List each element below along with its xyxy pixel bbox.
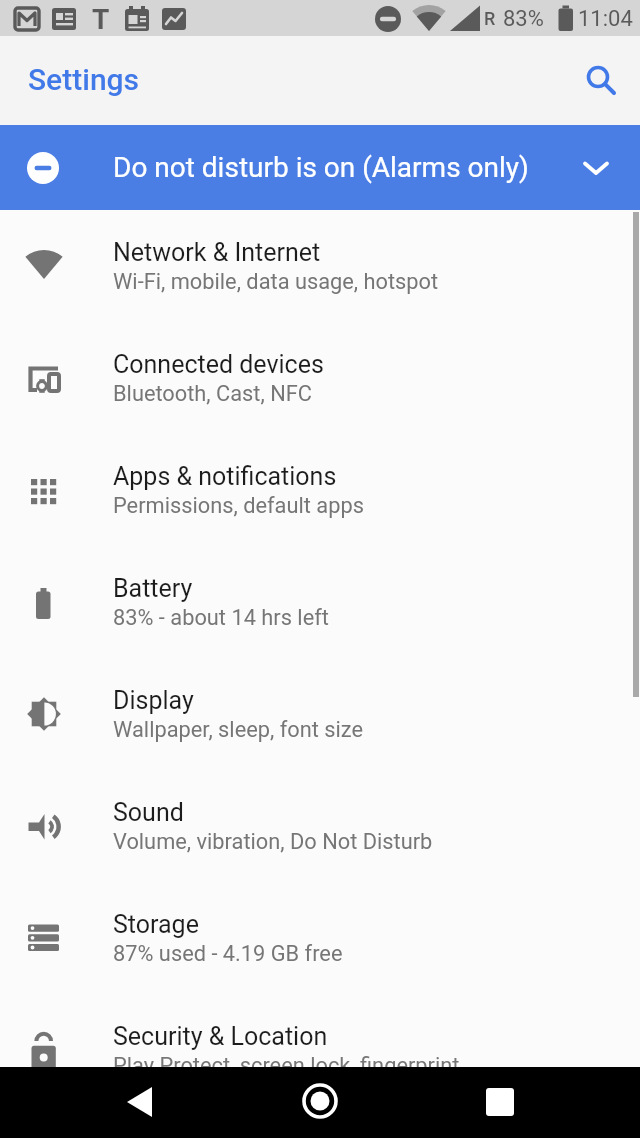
button[interactable]: Battery — [0, 546, 640, 658]
staticText: Bluetooth, Cast, NFC — [113, 381, 312, 407]
staticText: Connected devices — [113, 350, 324, 379]
button[interactable]: Sound — [0, 770, 640, 882]
button[interactable]: Apps & notifications — [0, 434, 640, 546]
button[interactable]: Network & Internet — [0, 210, 640, 322]
staticText: Do not disturb is on (Alarms only) — [113, 151, 529, 184]
staticText: Sound — [113, 798, 184, 827]
button[interactable] — [470, 1082, 530, 1122]
button[interactable]: Storage — [0, 882, 640, 994]
staticText: R — [484, 8, 496, 29]
staticText: Wallpaper, sleep, font size — [113, 717, 364, 743]
staticText: Permissions, default apps — [113, 493, 364, 519]
staticText: 83% - about 14 hrs left — [113, 605, 329, 631]
button[interactable] — [110, 1082, 170, 1122]
staticText: 83% — [503, 6, 544, 32]
staticText: Display — [113, 686, 194, 715]
staticText: Play Protect, screen lock, fingerprint — [113, 1053, 460, 1079]
staticText: Battery — [113, 574, 193, 603]
staticText: Volume, vibration, Do Not Disturb — [113, 829, 433, 855]
staticText: Settings — [28, 62, 140, 97]
button[interactable] — [290, 1082, 350, 1122]
button[interactable]: Do not disturb is on (Alarms only) — [0, 125, 640, 210]
staticText: 87% used - 4.19 GB free — [113, 941, 343, 967]
staticText: T — [92, 3, 110, 36]
staticText: Network & Internet — [113, 238, 321, 267]
button[interactable] — [576, 54, 624, 102]
staticText: Security & Location — [113, 1022, 328, 1051]
staticText: Wi-Fi, mobile, data usage, hotspot — [113, 269, 439, 295]
staticText: Storage — [113, 910, 199, 939]
button[interactable]: Security & Location — [0, 994, 640, 1106]
staticText: Apps & notifications — [113, 462, 337, 491]
button[interactable]: Connected devices — [0, 322, 640, 434]
button[interactable]: Display — [0, 658, 640, 770]
staticText: 11:04 — [578, 6, 633, 32]
